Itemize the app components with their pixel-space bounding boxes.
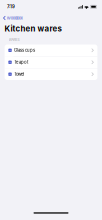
button[interactable]: Teapot: [5, 56, 97, 68]
button[interactable]: Woodbox: [0, 14, 25, 22]
button[interactable]: Towel: [5, 68, 97, 80]
staticText: Glass cups: [14, 48, 35, 53]
staticText: Kitchen wares: [4, 24, 61, 33]
staticText: Teapot: [14, 60, 28, 65]
button[interactable]: Glass cups: [5, 44, 97, 56]
staticText: WARES: [8, 38, 19, 42]
staticText: 7:19: [7, 4, 15, 9]
staticText: Towel: [14, 72, 24, 77]
staticText: Woodbox: [7, 16, 23, 20]
